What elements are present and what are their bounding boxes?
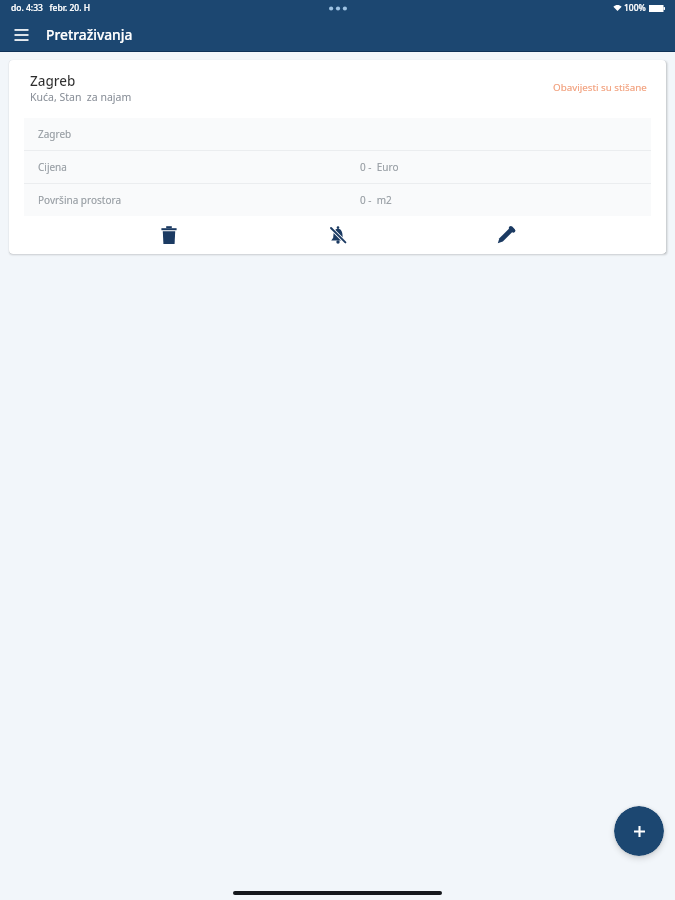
staticText: Površina prostora — [38, 193, 121, 207]
staticText: Pretraživanja — [46, 25, 133, 44]
staticText: Zagreb — [30, 72, 76, 90]
button[interactable]: Mute notifications — [319, 216, 357, 254]
staticText: 0 - m2 — [360, 193, 637, 207]
button[interactable]: Edit — [487, 216, 525, 254]
button[interactable]: Površina prostora — [24, 184, 651, 216]
staticText: Kuća, Stan za najam — [30, 90, 132, 104]
staticText: 0 - Euro — [360, 160, 637, 174]
button[interactable]: Menu — [5, 20, 37, 52]
staticText: Obavijesti su stišane — [553, 81, 647, 94]
button[interactable]: Zagreb — [9, 60, 666, 118]
staticText: do. 4:33 febr. 20. H — [11, 2, 91, 14]
staticText: 100% — [624, 2, 646, 14]
button[interactable]: Add search — [614, 806, 664, 856]
staticText: Zagreb — [38, 127, 72, 141]
button[interactable]: Zagreb — [24, 118, 651, 150]
button[interactable]: Cijena — [24, 151, 651, 183]
button[interactable]: Delete — [150, 216, 188, 254]
staticText: Cijena — [38, 160, 67, 174]
